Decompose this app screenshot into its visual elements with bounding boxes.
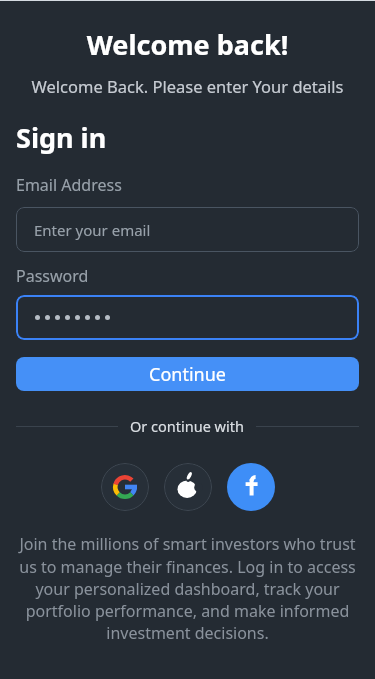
staticText: Join the millions of smart investors who… bbox=[16, 533, 359, 643]
staticText: Welcome Back. Please enter Your details bbox=[0, 75, 375, 97]
button[interactable] bbox=[16, 295, 359, 340]
staticText: Sign in bbox=[16, 119, 107, 156]
staticText: Or continue with bbox=[130, 416, 244, 436]
staticText: Enter your email bbox=[34, 220, 151, 240]
button[interactable] bbox=[227, 463, 275, 511]
button[interactable]: Continue bbox=[16, 357, 359, 391]
button[interactable] bbox=[164, 463, 212, 511]
staticText: Welcome back! bbox=[0, 26, 375, 63]
staticText: Password bbox=[16, 265, 89, 287]
staticText: Continue bbox=[149, 362, 226, 387]
staticText: Email Address bbox=[16, 174, 122, 196]
button[interactable]: Enter your email bbox=[16, 207, 359, 252]
button[interactable] bbox=[101, 463, 149, 511]
